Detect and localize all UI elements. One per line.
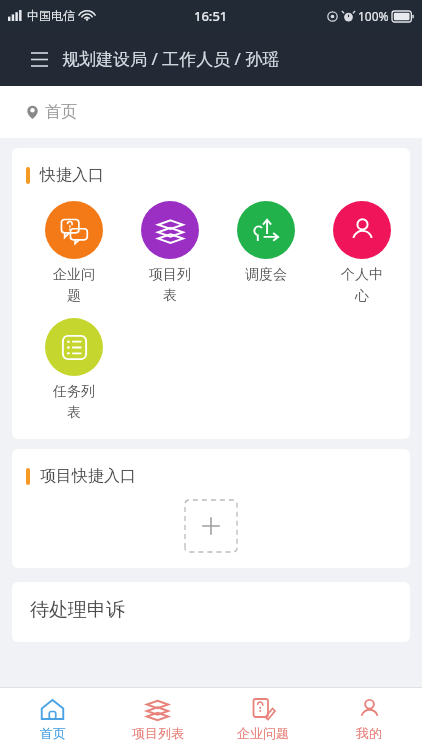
button[interactable]: 项目列 表: [122, 199, 218, 306]
button[interactable]: 个人中 心: [314, 199, 410, 306]
staticText: 首页: [45, 102, 77, 122]
staticText: 任务列 表: [53, 383, 95, 421]
staticText: 调度会: [245, 266, 287, 284]
staticText: 100%: [358, 8, 389, 24]
button[interactable]: 待处理申诉: [12, 582, 410, 642]
button[interactable]: 企业问 题: [26, 199, 122, 306]
staticText: 待处理申诉: [30, 598, 125, 622]
button[interactable]: 首页: [0, 688, 105, 750]
button[interactable]: 项目列表: [105, 688, 210, 750]
button[interactable]: Add project shortcut: [185, 500, 237, 552]
staticText: 企业问题: [237, 725, 289, 741]
button[interactable]: Menu: [26, 46, 52, 72]
staticText: 项目快捷入口: [40, 466, 136, 486]
staticText: 我的: [356, 725, 382, 741]
staticText: 快捷入口: [40, 165, 104, 185]
button[interactable]: 调度会: [218, 199, 314, 286]
staticText: 项目列表: [132, 725, 184, 741]
staticText: 16:51: [194, 7, 228, 25]
staticText: 项目列 表: [149, 266, 191, 304]
button[interactable]: 首页: [27, 86, 422, 138]
button[interactable]: 规划建设局 / 工作人员 / 孙瑶: [62, 47, 280, 70]
staticText: 中国电信: [27, 8, 75, 23]
staticText: 首页: [40, 725, 66, 741]
staticText: 个人中 心: [341, 266, 383, 304]
staticText: 企业问 题: [53, 266, 95, 304]
button[interactable]: 任务列 表: [26, 316, 122, 423]
button[interactable]: 我的: [316, 688, 422, 750]
button[interactable]: 企业问题: [210, 688, 316, 750]
